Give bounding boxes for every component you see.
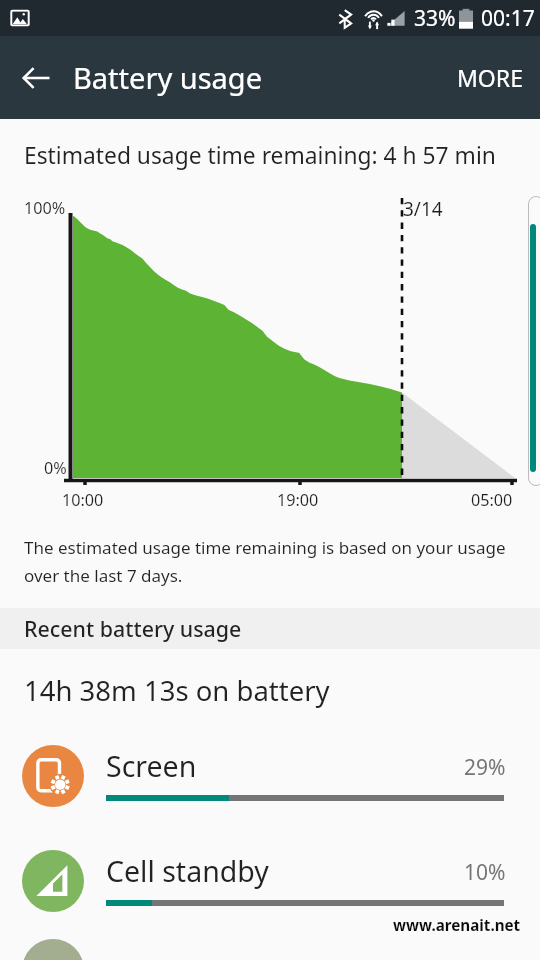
staticText: 19:00 [277,489,319,511]
button[interactable]: Screen [0,729,540,834]
staticText: 100% [24,197,66,219]
staticText: Screen [106,747,197,786]
button[interactable]: MORE [439,36,540,119]
staticText: 3/14 [403,196,443,222]
staticText: 05:00 [471,489,513,511]
staticText: 33% [414,4,456,33]
staticText: 00:17 [481,4,535,33]
staticText: MORE [457,62,523,93]
staticText: Estimated usage time remaining: 4 h 57 m… [24,140,496,171]
staticText: www.arenait.net [393,915,521,936]
staticText: 10% [464,858,506,887]
staticText: 29% [464,753,506,782]
button[interactable]: Back [8,50,64,106]
staticText: Recent battery usage [24,614,242,643]
staticText: 0% [44,457,67,479]
staticText: The estimated usage time remaining is ba… [24,536,506,587]
staticText: Cell standby [106,852,269,891]
staticText: Battery usage [73,58,262,97]
staticText: 14h 38m 13s on battery [24,672,330,709]
button[interactable]: Cell standby [0,834,540,939]
staticText: 10:00 [62,489,104,511]
